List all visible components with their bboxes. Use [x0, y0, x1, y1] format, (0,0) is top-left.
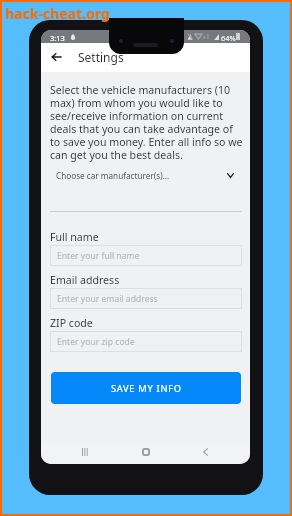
- button[interactable]: Recents: [74, 441, 96, 463]
- button[interactable]: Back: [45, 43, 67, 71]
- staticText: Choose car manufacturer(s)...: [56, 170, 241, 181]
- staticText: Settings: [78, 49, 124, 65]
- staticText: 64%: [221, 33, 236, 43]
- staticText: 3:13: [50, 33, 65, 43]
- staticText: SAVE MY INFO: [111, 382, 182, 395]
- button[interactable]: Home: [135, 441, 157, 463]
- staticText: Full name: [50, 230, 99, 244]
- staticText: Select the vehicle manufacturers (10 max…: [50, 83, 243, 162]
- button[interactable]: Enter your zip code: [50, 331, 242, 352]
- button[interactable]: Choose car manufacturer(s)...: [50, 164, 242, 186]
- staticText: hack-cheat.org: [5, 4, 110, 23]
- staticText: Email address: [50, 273, 120, 287]
- staticText: Enter your full name: [57, 250, 140, 262]
- staticText: Enter your zip code: [57, 336, 135, 348]
- button[interactable]: Enter your email address: [50, 288, 242, 309]
- staticText: Enter your email address: [57, 293, 158, 305]
- button[interactable]: Back: [194, 441, 216, 463]
- button[interactable]: Enter your full name: [50, 245, 242, 266]
- staticText: ZIP code: [50, 316, 93, 330]
- button[interactable]: SAVE MY INFO: [51, 372, 241, 404]
